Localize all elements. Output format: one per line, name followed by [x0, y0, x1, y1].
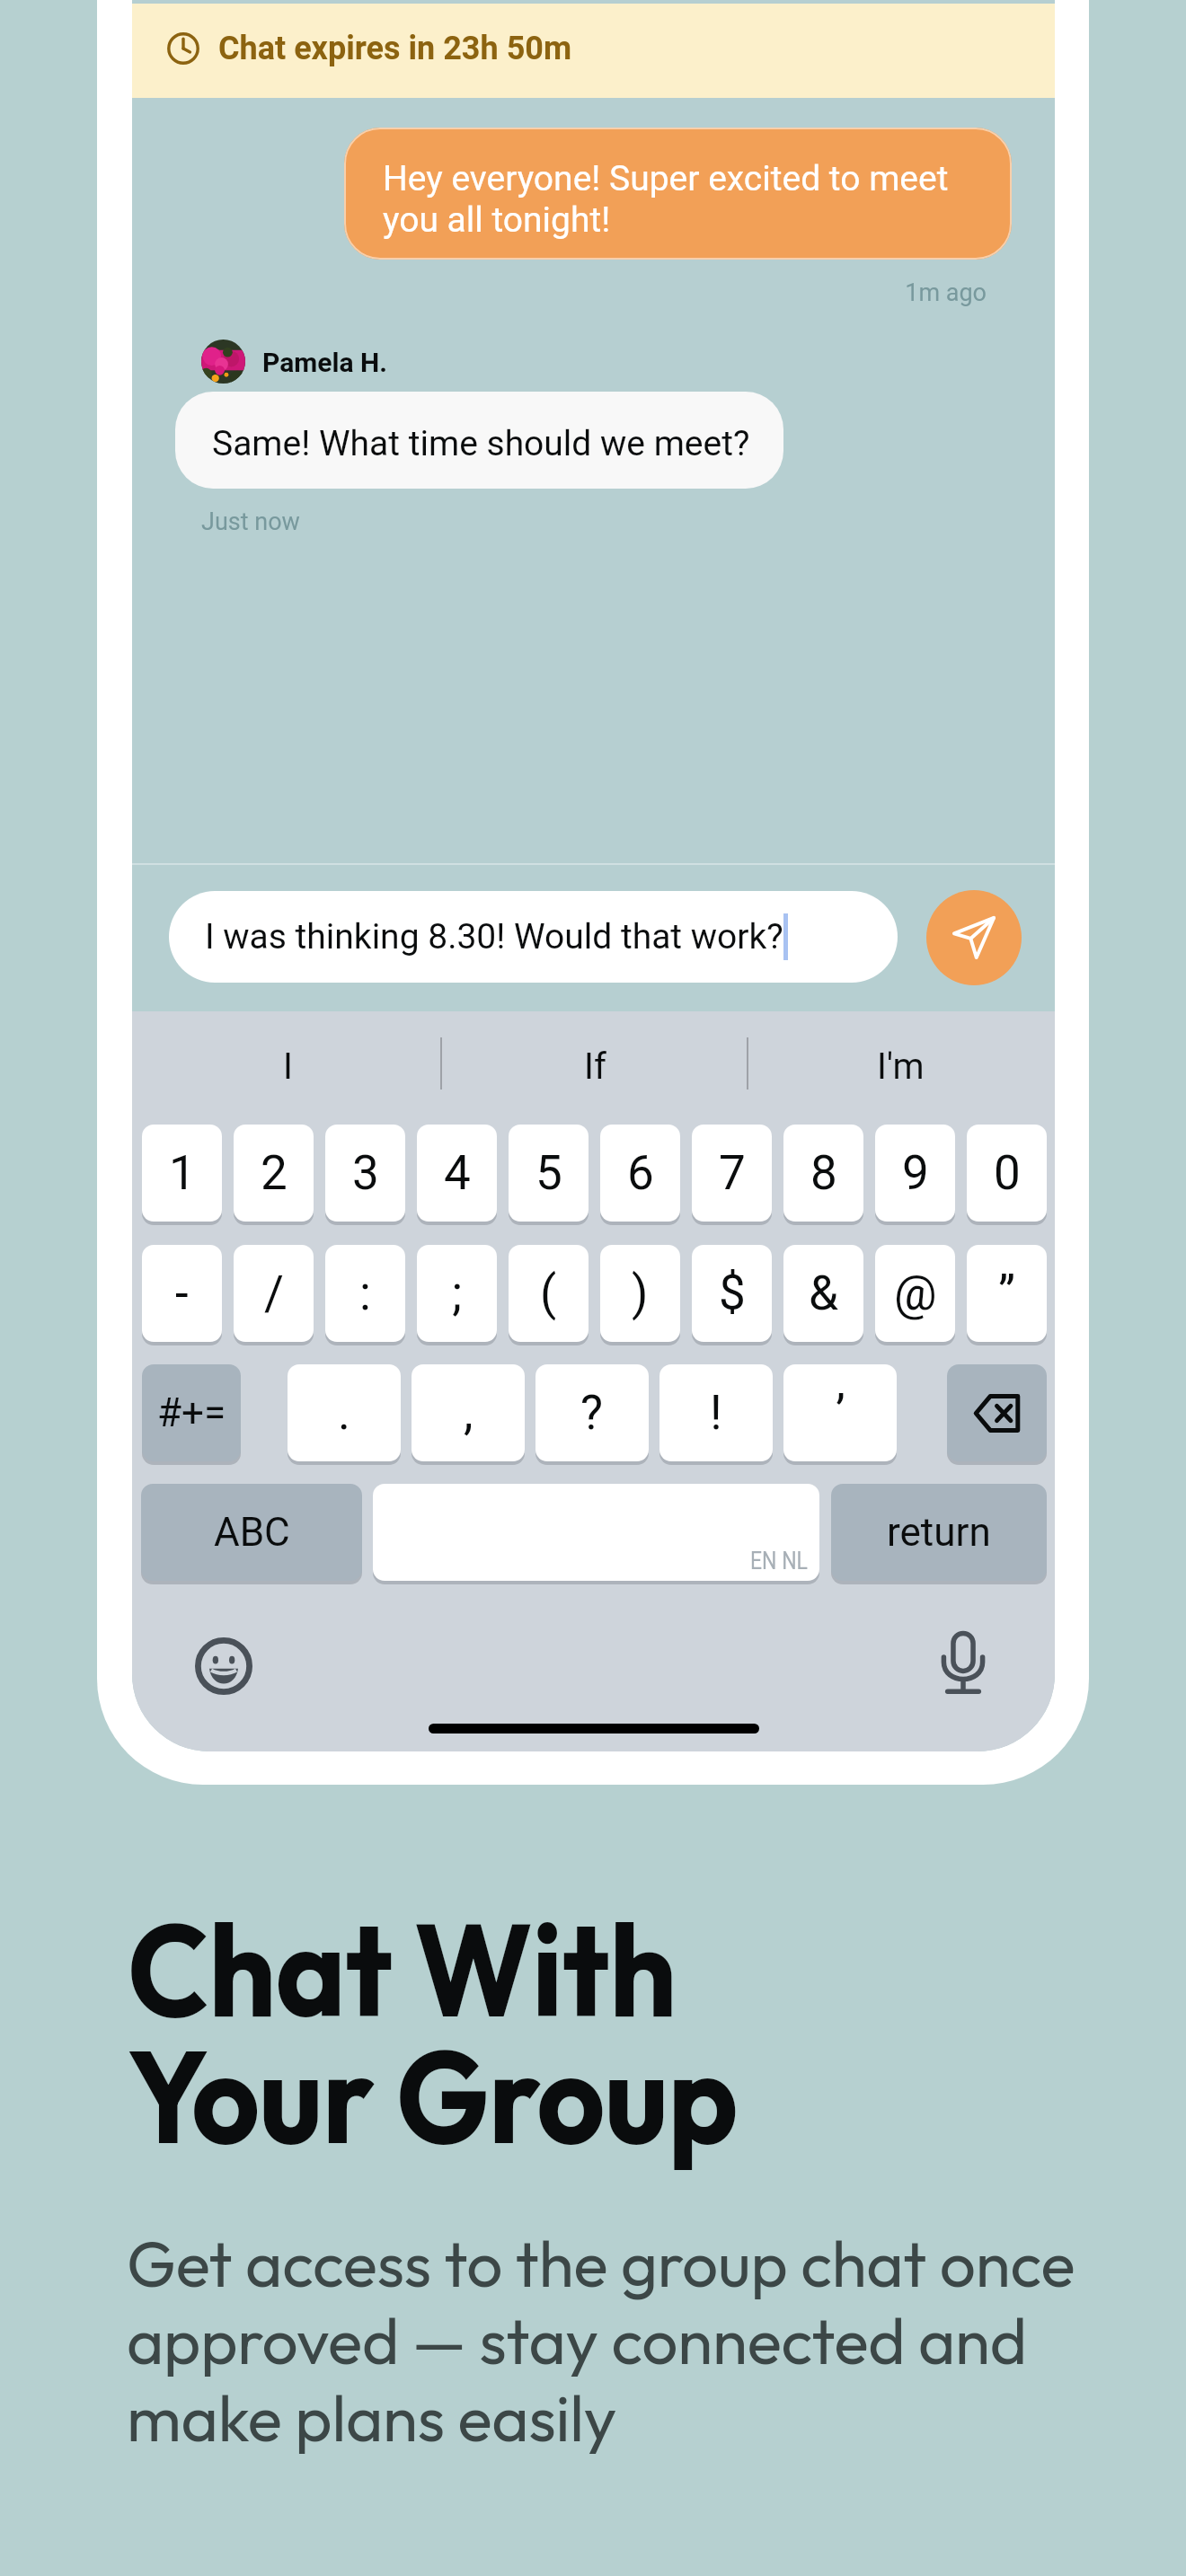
button[interactable]: 9 [875, 1125, 955, 1222]
button[interactable]: : [325, 1245, 405, 1342]
button[interactable]: 5 [509, 1125, 589, 1222]
button[interactable]: & [783, 1245, 863, 1342]
staticText: I'm [877, 1045, 925, 1088]
staticText: 1 [169, 1145, 196, 1201]
staticText: 3 [352, 1145, 379, 1201]
staticText: - [175, 1266, 189, 1321]
button[interactable]: Backspace [947, 1364, 1047, 1461]
staticText: ) [632, 1266, 649, 1321]
button[interactable]: 6 [600, 1125, 680, 1222]
button[interactable]: . [288, 1364, 401, 1461]
staticText: I was thinking 8.30! Would that work? [205, 916, 783, 957]
staticText: ( [540, 1266, 557, 1321]
staticText: Hey everyone! Super excited to meet you … [383, 158, 967, 241]
button[interactable]: ) [600, 1245, 680, 1342]
button[interactable]: Same! What time should we meet? [175, 392, 783, 489]
staticText: Same! What time should we meet? [212, 423, 750, 464]
button[interactable]: ’ [783, 1364, 897, 1461]
staticText: 6 [627, 1145, 654, 1201]
staticText: @ [894, 1266, 937, 1321]
button[interactable]: Space [373, 1484, 819, 1581]
button[interactable]: 3 [325, 1125, 405, 1222]
staticText: ! [710, 1385, 722, 1441]
button[interactable]: Voice input [942, 1632, 985, 1695]
staticText: ? [580, 1385, 604, 1441]
staticText: 5 [535, 1145, 562, 1201]
staticText: , [464, 1385, 474, 1441]
button[interactable]: 0 [967, 1125, 1047, 1222]
button[interactable]: I [207, 1011, 368, 1121]
staticText: #+= [157, 1389, 226, 1436]
button[interactable]: Hey everyone! Super excited to meet you … [344, 128, 1012, 260]
button[interactable]: , [412, 1364, 525, 1461]
staticText: I [283, 1045, 293, 1088]
staticText: 9 [902, 1145, 929, 1201]
staticText: ; [452, 1266, 463, 1321]
button[interactable]: ; [417, 1245, 497, 1342]
button[interactable]: ! [659, 1364, 773, 1461]
button[interactable]: / [234, 1245, 314, 1342]
button[interactable]: ” [967, 1245, 1047, 1342]
staticText: $ [719, 1266, 746, 1321]
button[interactable]: I was thinking 8.30! Would that work? [169, 891, 898, 983]
staticText: EN NL [750, 1546, 808, 1575]
button[interactable]: ( [509, 1245, 589, 1342]
button[interactable]: Send message [926, 890, 1022, 985]
button[interactable]: - [142, 1245, 222, 1342]
staticText: : [359, 1266, 371, 1321]
staticText: 1m ago [132, 278, 987, 307]
staticText: ABC [214, 1509, 290, 1556]
staticText: ” [998, 1266, 1015, 1321]
staticText: Chat With Your Group [128, 1886, 738, 2177]
button[interactable]: @ [875, 1245, 955, 1342]
staticText: 2 [261, 1145, 288, 1201]
button[interactable]: I'm [819, 1011, 981, 1121]
staticText: 8 [810, 1145, 837, 1201]
button[interactable]: 4 [417, 1125, 497, 1222]
staticText: return [887, 1509, 991, 1556]
staticText: Chat expires in 23h 50m [218, 30, 572, 67]
staticText: & [809, 1266, 838, 1321]
button[interactable]: If [514, 1011, 676, 1121]
button[interactable]: ? [535, 1364, 649, 1461]
button[interactable]: return [831, 1484, 1047, 1581]
button[interactable]: $ [692, 1245, 772, 1342]
button[interactable]: 2 [234, 1125, 314, 1222]
staticText: Just now [201, 507, 300, 536]
staticText: Get access to the group chat once approv… [127, 2223, 1106, 2458]
staticText: 4 [444, 1145, 471, 1201]
staticText: . [338, 1385, 350, 1441]
button[interactable]: Emoji keyboard [195, 1637, 252, 1695]
button[interactable]: 7 [692, 1125, 772, 1222]
staticText: 7 [719, 1145, 746, 1201]
staticText: 0 [994, 1145, 1021, 1201]
button[interactable]: 1 [142, 1125, 222, 1222]
staticText: If [584, 1045, 606, 1088]
button[interactable]: 8 [783, 1125, 863, 1222]
button[interactable]: ABC [141, 1484, 362, 1581]
staticText: Pamela H. [262, 347, 387, 378]
staticText: / [264, 1266, 284, 1321]
button[interactable]: #+= [142, 1364, 241, 1461]
staticText: ’ [836, 1385, 845, 1441]
